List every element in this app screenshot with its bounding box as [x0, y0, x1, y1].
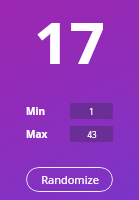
staticText: 43 [87, 129, 97, 140]
button[interactable]: Randomize [26, 167, 113, 192]
staticText: 1 [89, 106, 94, 117]
button[interactable]: Min value field [70, 103, 113, 119]
staticText: Max [26, 127, 48, 141]
staticText: 17 [34, 2, 105, 64]
staticText: Randomize [41, 172, 99, 187]
staticText: Min [26, 104, 45, 118]
button[interactable]: Max value field [70, 126, 113, 142]
